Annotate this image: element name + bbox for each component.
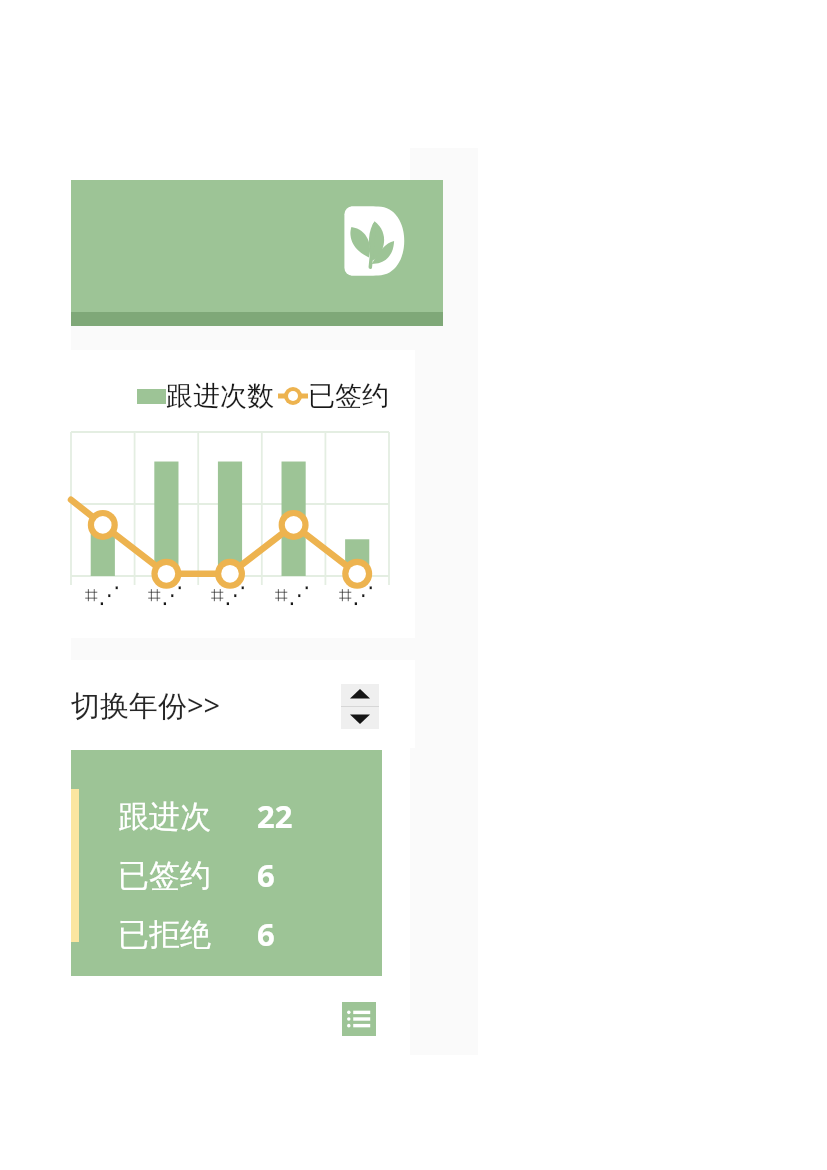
- button[interactable]: List view: [342, 1002, 376, 1036]
- staticText: 已签约: [118, 856, 211, 895]
- staticText: ⌗⋰: [275, 582, 311, 609]
- staticText: ⌗⋰: [339, 582, 375, 609]
- staticText: ⌗⋰: [148, 582, 184, 609]
- button[interactable]: App logo: [71, 180, 443, 326]
- staticText: ⌗⋰: [211, 582, 247, 609]
- other: App logo: [343, 200, 413, 282]
- staticText: 切换年份>>: [71, 685, 221, 725]
- staticText: ⌗⋰: [85, 582, 121, 609]
- button[interactable]: 切换年份>>: [71, 682, 281, 728]
- staticText: 已拒绝: [118, 915, 211, 954]
- staticText: 6: [257, 854, 275, 896]
- button[interactable]: Change year: [341, 684, 379, 729]
- button[interactable]: 跟进次数: [137, 378, 389, 414]
- staticText: 22: [257, 795, 293, 837]
- staticText: 已签约: [308, 379, 389, 413]
- staticText: 跟进次: [118, 797, 211, 836]
- staticText: 跟进次数: [166, 379, 274, 413]
- button[interactable]: 跟进次: [71, 750, 382, 976]
- staticText: 6: [257, 913, 275, 955]
